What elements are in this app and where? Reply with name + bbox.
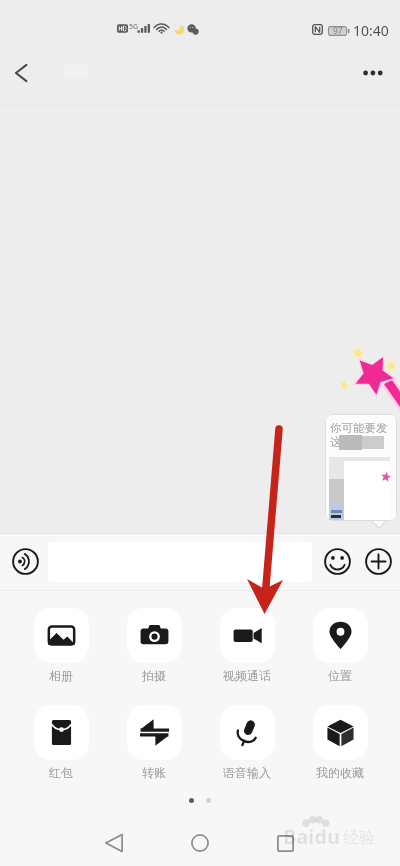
staticText: 位置 xyxy=(328,668,352,683)
staticText: Baidu xyxy=(283,823,340,850)
button[interactable]: 语音输入 xyxy=(208,705,286,780)
button[interactable]: Recent apps xyxy=(259,817,311,866)
button[interactable]: More functions xyxy=(356,533,400,590)
button[interactable]: 你可能要发 xyxy=(325,414,397,521)
button[interactable] xyxy=(48,542,312,582)
staticText: 这 xyxy=(330,435,342,449)
staticText: 经验 xyxy=(343,828,375,848)
staticText: 语音输入 xyxy=(223,765,271,780)
staticText: 5G xyxy=(129,22,139,32)
staticText: 你可能要发 xyxy=(330,421,388,435)
button[interactable]: More options xyxy=(350,52,398,94)
staticText: 10:40 xyxy=(353,21,389,40)
button[interactable]: Voice message xyxy=(1,533,49,590)
button[interactable]: 红包 xyxy=(22,705,100,780)
staticText: 拍摄 xyxy=(142,668,166,683)
button[interactable]: Back xyxy=(0,52,42,94)
button[interactable]: Home xyxy=(174,817,226,866)
staticText: 我的收藏 xyxy=(316,765,364,780)
staticText: 视频通话 xyxy=(223,668,271,683)
staticText: 97 xyxy=(333,25,343,37)
staticText: 转账 xyxy=(142,765,166,780)
button[interactable]: Emoji xyxy=(315,533,359,590)
staticText: 相册 xyxy=(49,668,73,683)
staticText: 红包 xyxy=(49,765,73,780)
button[interactable]: 视频通话 xyxy=(208,608,286,683)
button[interactable]: 拍摄 xyxy=(115,608,193,683)
button[interactable]: 我的收藏 xyxy=(301,705,379,780)
button[interactable]: 相册 xyxy=(22,608,100,683)
button[interactable]: Back xyxy=(88,817,140,866)
button[interactable]: 转账 xyxy=(115,705,193,780)
button[interactable]: 位置 xyxy=(301,608,379,683)
